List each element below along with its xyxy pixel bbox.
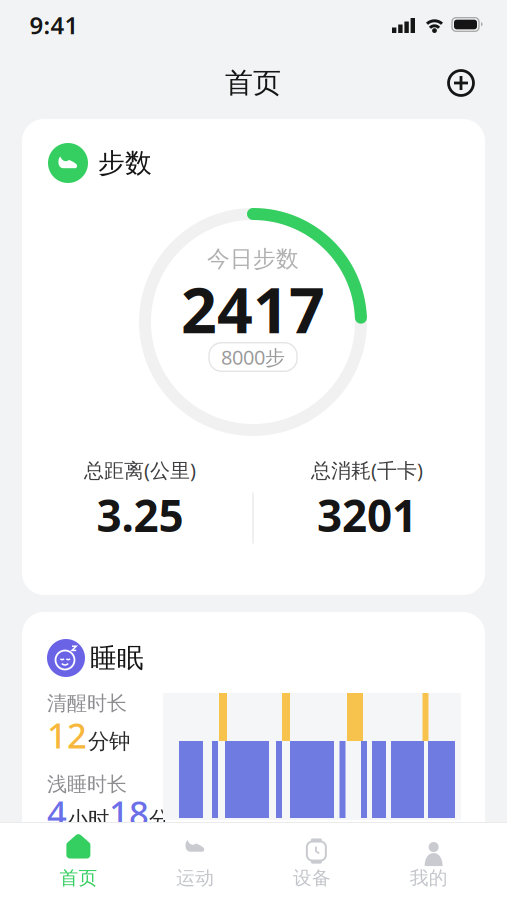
staticText: 分	[149, 806, 170, 832]
staticText: 3.25	[96, 486, 183, 544]
staticText: 4	[47, 790, 67, 836]
staticText: 分钟	[88, 728, 130, 754]
button[interactable]: 步数	[22, 119, 485, 595]
staticText: 今日步数	[207, 245, 299, 273]
staticText: 我的	[410, 866, 448, 889]
staticText: 睡眠	[90, 642, 144, 674]
button[interactable]: 我的	[370, 831, 487, 891]
staticText: 首页	[225, 66, 281, 100]
staticText: 总消耗(千卡)	[311, 457, 423, 483]
staticText: 12	[47, 712, 87, 758]
staticText: 设备	[293, 866, 331, 889]
staticText: 清醒时长	[47, 691, 127, 716]
button[interactable]: 运动	[137, 831, 254, 891]
staticText: 首页	[59, 866, 97, 889]
staticText: 2417	[181, 267, 325, 351]
staticText: 8000步	[221, 344, 285, 370]
staticText: 3201	[317, 486, 417, 544]
button[interactable]: Add	[441, 63, 481, 103]
staticText: 步数	[98, 147, 152, 179]
staticText: 18	[109, 790, 149, 836]
staticText: 浅睡时长	[47, 772, 127, 797]
staticText: 总距离(公里)	[84, 457, 196, 483]
staticText: 9:41	[29, 9, 78, 41]
button[interactable]: 首页	[20, 831, 137, 891]
button[interactable]: 睡眠	[22, 612, 485, 852]
staticText: 小时	[67, 806, 109, 832]
staticText: 运动	[176, 866, 214, 889]
button[interactable]: 设备	[253, 831, 370, 891]
